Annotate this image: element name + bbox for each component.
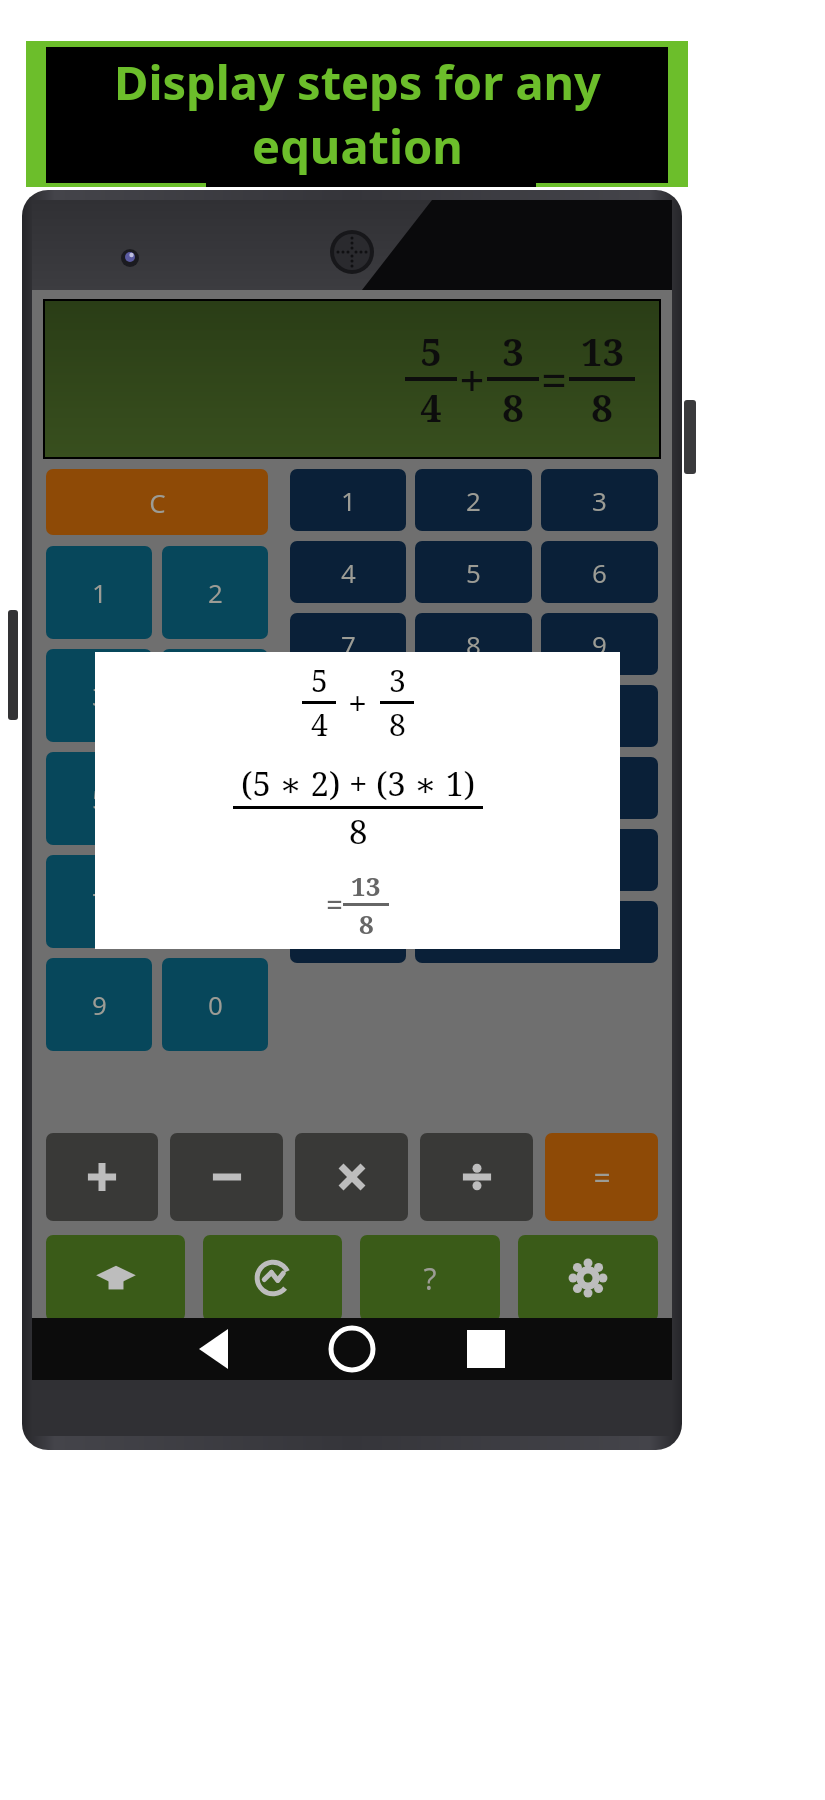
- staticText: 5: [92, 781, 107, 816]
- staticText: +: [459, 348, 485, 411]
- staticText: 8: [502, 381, 524, 433]
- staticText: 8: [466, 627, 481, 662]
- staticText: 5: [466, 771, 481, 806]
- staticText: =: [593, 1157, 611, 1198]
- staticText: 0: [208, 987, 223, 1022]
- staticText: 4: [341, 555, 356, 590]
- staticText: 3: [502, 325, 524, 377]
- staticText: 7: [92, 884, 107, 919]
- button[interactable]: 6: [541, 541, 658, 603]
- button[interactable]: 2: [162, 546, 268, 639]
- button[interactable]: 2: [415, 469, 532, 531]
- staticText: 7: [341, 627, 356, 662]
- staticText: 8: [359, 906, 374, 941]
- button[interactable]: Plus: [46, 1133, 158, 1221]
- staticText: 1: [341, 483, 356, 518]
- button[interactable]: Divide: [420, 1133, 533, 1221]
- button[interactable]: C: [46, 469, 268, 535]
- staticText: Display steps for any: [114, 50, 601, 114]
- button[interactable]: Settings: [518, 1235, 658, 1321]
- button[interactable]: Minus: [170, 1133, 283, 1221]
- button[interactable]: 6: [162, 752, 268, 845]
- staticText: =: [541, 348, 567, 411]
- button[interactable]: 1: [46, 546, 152, 639]
- staticText: 5: [420, 325, 442, 377]
- staticText: 4: [420, 381, 442, 433]
- staticText: 8: [349, 809, 368, 854]
- staticText: 3: [92, 678, 107, 713]
- staticText: +: [348, 680, 368, 726]
- button[interactable]: 4: [290, 541, 406, 603]
- button[interactable]: 9: [46, 958, 152, 1051]
- staticText: (5 ∗ 2) + (3 ∗ 1): [241, 761, 476, 806]
- button[interactable]: =: [545, 1133, 658, 1221]
- button[interactable]: 4: [162, 649, 268, 742]
- staticText: 8: [389, 704, 406, 745]
- button[interactable]: Backspace: [415, 901, 658, 963]
- staticText: 1: [92, 575, 107, 610]
- button[interactable]: History: [203, 1235, 342, 1321]
- staticText: 13: [351, 868, 381, 903]
- button[interactable]: 8: [415, 613, 532, 675]
- button[interactable]: 4: [290, 757, 406, 819]
- staticText: 2: [208, 575, 223, 610]
- staticText: 9: [592, 627, 607, 662]
- button[interactable]: ?: [360, 1235, 500, 1321]
- button[interactable]: 0: [162, 958, 268, 1051]
- button[interactable]: 0: [290, 901, 406, 963]
- staticText: 4: [311, 704, 328, 745]
- button[interactable]: Tutorial: [46, 1235, 185, 1321]
- staticText: =: [326, 884, 343, 925]
- staticText: 2: [466, 483, 481, 518]
- staticText: 4: [341, 771, 356, 806]
- staticText: 9: [92, 987, 107, 1022]
- button[interactable]: 1: [290, 469, 406, 531]
- button[interactable]: 1: [290, 685, 406, 747]
- staticText: 8: [591, 381, 613, 433]
- button[interactable]: 7: [46, 855, 152, 948]
- staticText: 6: [592, 555, 607, 590]
- staticText: ?: [423, 1258, 437, 1299]
- button[interactable]: 5: [415, 757, 532, 819]
- staticText: 7: [341, 843, 356, 878]
- staticText: 3: [592, 483, 607, 518]
- button[interactable]: 5: [46, 752, 152, 845]
- staticText: 5: [311, 660, 328, 701]
- staticText: 13: [581, 325, 624, 377]
- button[interactable]: Multiply: [295, 1133, 408, 1221]
- button[interactable]: 7: [290, 613, 406, 675]
- button[interactable]: 6: [541, 757, 658, 819]
- staticText: equation: [252, 114, 463, 178]
- button[interactable]: 3: [541, 685, 658, 747]
- button[interactable]: 3: [541, 469, 658, 531]
- button[interactable]: 3: [46, 649, 152, 742]
- staticText: 1: [341, 699, 356, 734]
- staticText: 0: [341, 915, 356, 950]
- staticText: C: [149, 485, 166, 520]
- button[interactable]: 9: [541, 613, 658, 675]
- staticText: 3: [389, 660, 406, 701]
- button[interactable]: 7: [290, 829, 406, 891]
- staticText: 5: [466, 555, 481, 590]
- button[interactable]: 5: [415, 541, 532, 603]
- button[interactable]: 9: [541, 829, 658, 891]
